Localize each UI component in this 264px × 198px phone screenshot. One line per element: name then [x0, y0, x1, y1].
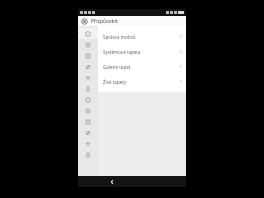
- button[interactable]: Settings category 7: [78, 105, 98, 116]
- button[interactable]: Settings category 0: [78, 28, 98, 39]
- button[interactable]: Settings category 4: [78, 72, 98, 83]
- button[interactable]: Settings category 5: [78, 83, 98, 94]
- button[interactable]: Menu: [81, 18, 88, 25]
- button[interactable]: Back: [107, 177, 117, 187]
- staticText: Galerie tapet: [103, 64, 179, 70]
- button[interactable]: Systémová tapeta: [98, 44, 186, 59]
- button[interactable]: Settings category 1: [78, 39, 98, 50]
- staticText: Živé tapety: [103, 79, 179, 85]
- staticText: Správce motivů: [103, 34, 179, 40]
- button[interactable]: Settings category 6: [78, 94, 98, 105]
- button[interactable]: Settings category 9: [78, 127, 98, 138]
- button[interactable]: Správce motivů: [98, 29, 186, 44]
- button[interactable]: Settings category 11: [78, 149, 98, 160]
- button[interactable]: Settings category 2: [78, 50, 98, 61]
- button[interactable]: Settings category 10: [78, 138, 98, 149]
- button[interactable]: Živé tapety: [98, 74, 186, 89]
- staticText: Přizpůsobit: [91, 18, 118, 25]
- button[interactable]: Galerie tapet: [98, 59, 186, 74]
- button[interactable]: Settings category 3: [78, 61, 98, 72]
- staticText: Systémová tapeta: [103, 49, 179, 55]
- button[interactable]: Settings category 8: [78, 116, 98, 127]
